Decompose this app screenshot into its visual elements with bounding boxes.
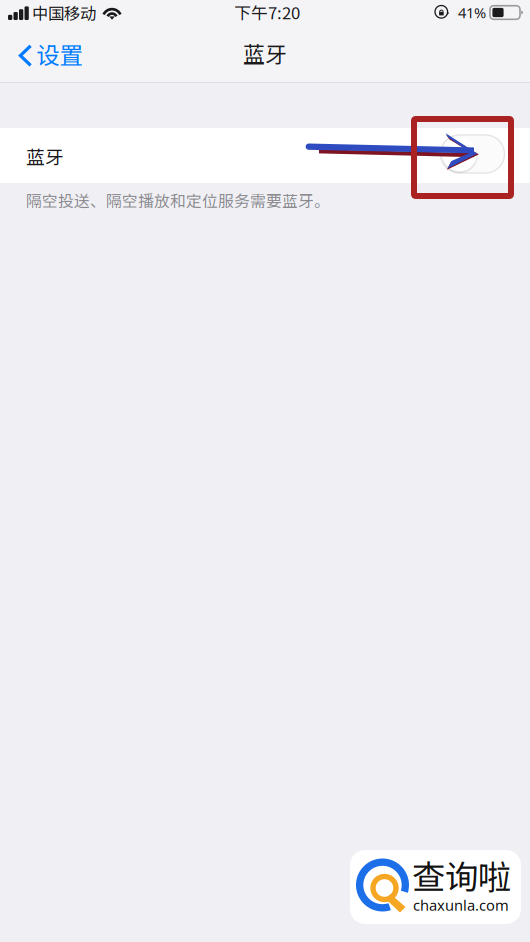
staticText: 设置 [36, 37, 82, 71]
staticText: 蓝牙 [243, 37, 287, 69]
staticText: 41% [458, 2, 486, 22]
staticText: 隔空投送、隔空播放和定位服务需要蓝牙。 [26, 188, 330, 211]
staticText: 蓝牙 [26, 142, 64, 169]
staticText: 中国移动 [32, 1, 96, 24]
staticText: chaxunla.com [413, 895, 509, 915]
button[interactable]: 设置 [17, 34, 107, 78]
staticText: 查询啦 [412, 851, 511, 899]
button[interactable]: 蓝牙 [0, 128, 530, 183]
staticText: 下午7:20 [234, 0, 300, 24]
